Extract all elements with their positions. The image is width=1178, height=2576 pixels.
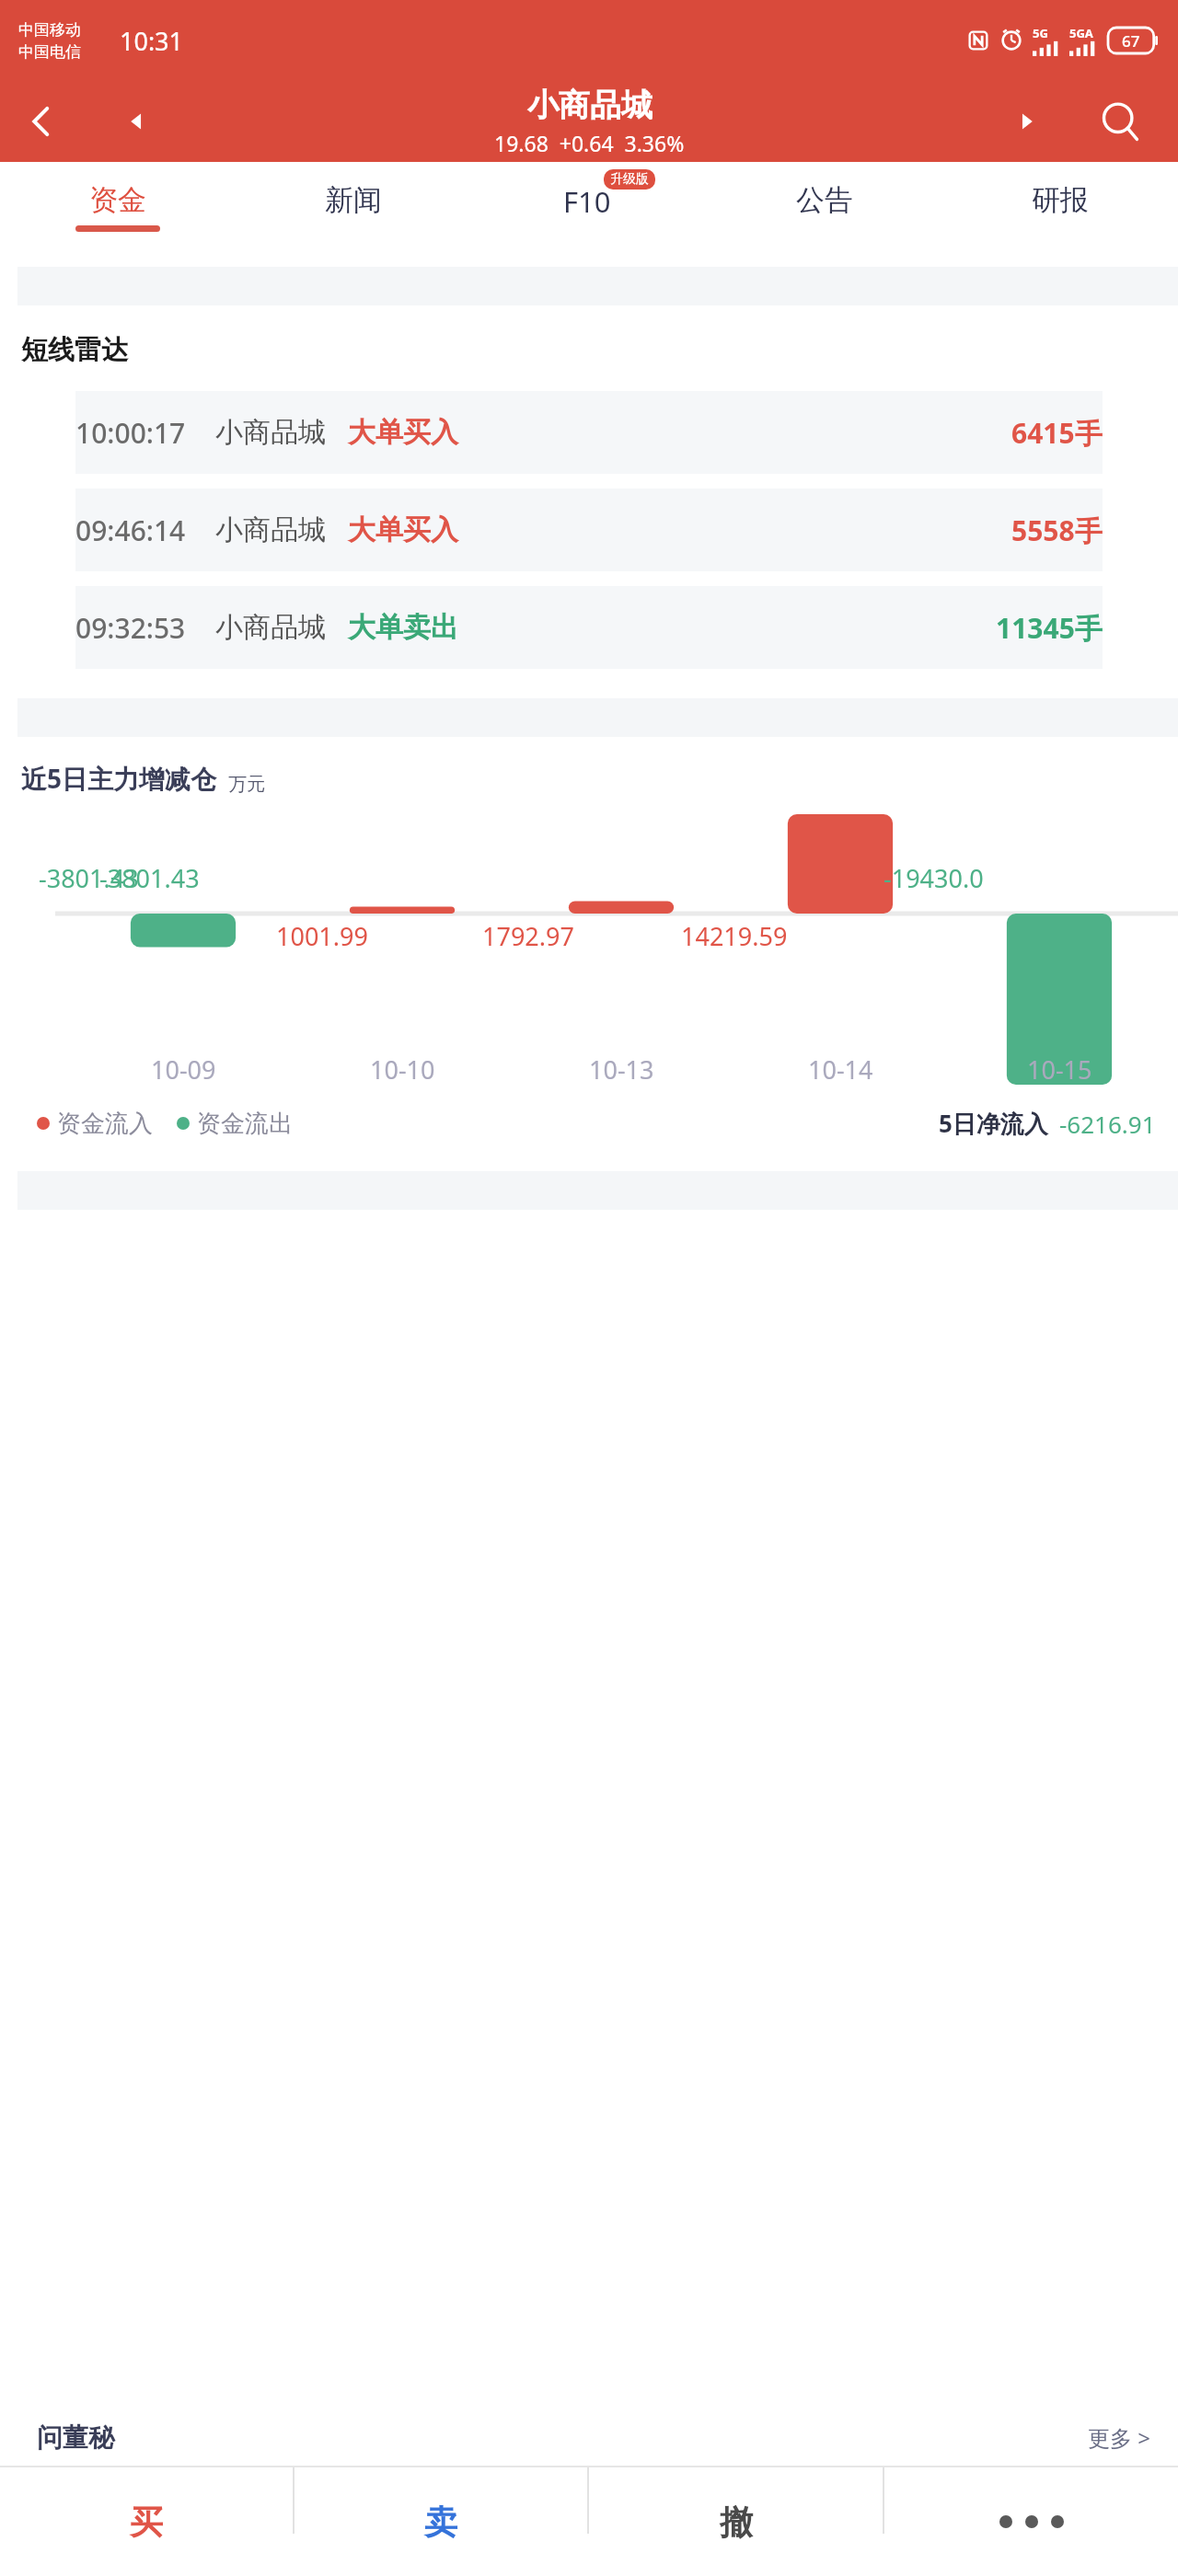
staticText: 5558手	[1011, 512, 1103, 549]
staticText: 更多 >	[1088, 2422, 1150, 2453]
staticText: 1792.97	[482, 919, 574, 953]
button[interactable]: 09:32:53	[75, 586, 1103, 669]
staticText: 09:32:53	[75, 609, 186, 647]
staticText: 大单买入	[348, 512, 458, 547]
staticText: 10-14	[808, 1052, 873, 1087]
staticText: 升级版	[610, 171, 649, 188]
staticText: 小商品城	[527, 86, 653, 125]
button[interactable]: Search	[1099, 100, 1141, 143]
button[interactable]: 卖	[294, 2467, 587, 2576]
staticText: 买	[130, 2501, 163, 2543]
staticText: 10:00:17	[75, 414, 186, 452]
staticText: -6216.91	[1059, 1108, 1156, 1140]
staticText: 67	[1122, 30, 1140, 52]
staticText: 10-15	[1027, 1052, 1092, 1087]
button[interactable]: 公告	[707, 162, 942, 254]
staticText: 中国电信	[18, 42, 81, 62]
button[interactable]: F10	[471, 162, 707, 254]
staticText: 5G	[1033, 25, 1048, 41]
staticText: 5GA	[1069, 25, 1093, 41]
staticText: 10-13	[589, 1052, 654, 1087]
staticText: 撤	[720, 2501, 753, 2543]
staticText: 11345手	[996, 609, 1103, 647]
staticText: 短线雷达	[21, 333, 128, 367]
button[interactable]: 10:00:17	[75, 391, 1103, 474]
staticText: -3801.43	[39, 861, 139, 895]
staticText: 资金流出	[197, 1109, 293, 1139]
staticText: 公告	[796, 182, 853, 218]
button[interactable]: 研报	[942, 162, 1178, 254]
button[interactable]: 09:46:14	[75, 489, 1103, 571]
staticText: 中国移动	[18, 20, 81, 40]
button[interactable]: Previous stock	[121, 106, 153, 137]
staticText: 资金流入	[57, 1109, 153, 1139]
staticText: 大单买入	[348, 415, 458, 450]
staticText: 大单卖出	[348, 610, 458, 645]
staticText: 新闻	[325, 182, 382, 218]
staticText: 09:46:14	[75, 512, 186, 549]
button[interactable]: Back	[22, 101, 63, 142]
staticText: 6415手	[1011, 414, 1103, 452]
staticText: 小商品城	[215, 512, 326, 547]
staticText: 14219.59	[681, 919, 788, 953]
staticText: 10-09	[151, 1052, 216, 1087]
button[interactable]: 新闻	[236, 162, 471, 254]
button[interactable]: More	[884, 2467, 1178, 2576]
button[interactable]: 买	[0, 2467, 293, 2576]
staticText: -19430.0	[883, 861, 984, 895]
staticText: 问董秘	[37, 2421, 114, 2454]
staticText: 卖	[424, 2501, 457, 2543]
staticText: 万元	[228, 773, 265, 796]
button[interactable]: Next stock	[1011, 106, 1042, 137]
staticText: 19.68 +0.64 3.36%	[494, 129, 685, 157]
button[interactable]: 撤	[589, 2467, 883, 2576]
staticText: 10:31	[120, 24, 184, 58]
button[interactable]: 资金	[0, 162, 236, 254]
staticText: 近5日主力增减仓	[21, 761, 217, 796]
staticText: 5日净流入	[939, 1107, 1048, 1140]
staticText: F10	[563, 182, 611, 221]
staticText: -3801.43	[99, 861, 200, 895]
staticText: 小商品城	[215, 610, 326, 645]
staticText: 研报	[1032, 182, 1089, 218]
staticText: 小商品城	[215, 415, 326, 450]
staticText: 10-10	[370, 1052, 435, 1087]
staticText: 1001.99	[276, 919, 368, 953]
staticText: 资金	[89, 182, 146, 218]
